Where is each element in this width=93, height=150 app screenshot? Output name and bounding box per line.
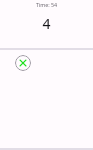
staticText: 4 [0,14,93,33]
staticText: Time: 54 [0,1,93,8]
button[interactable]: Answer marker [15,55,31,71]
